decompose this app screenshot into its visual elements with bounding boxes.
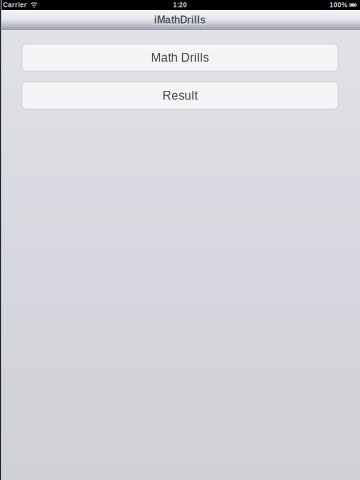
staticText: 100% <box>330 1 348 9</box>
staticText: iMathDrills <box>154 15 206 27</box>
staticText: iMathDrills <box>154 14 206 26</box>
staticText: 1:20 <box>173 1 187 9</box>
staticText: Math Drills <box>151 51 209 64</box>
button[interactable]: Math Drills <box>22 44 338 71</box>
staticText: Carrier <box>3 1 27 9</box>
button[interactable]: Result <box>22 82 338 109</box>
staticText: Result <box>162 89 197 102</box>
